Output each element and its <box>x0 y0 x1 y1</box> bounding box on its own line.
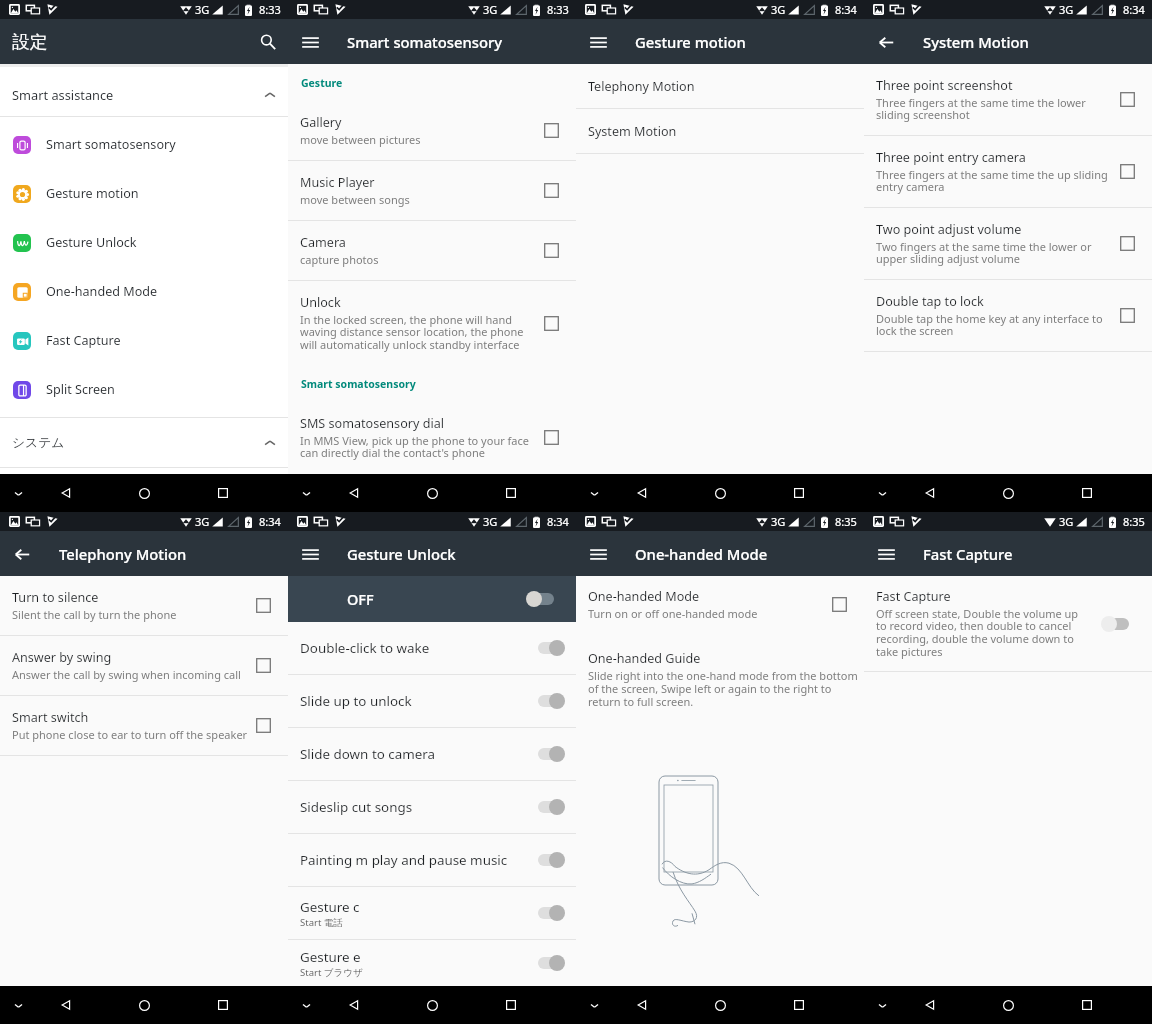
staticText: In the locked screen, the phone will han… <box>300 312 540 352</box>
staticText: Gesture motion <box>635 32 746 52</box>
staticText: Gesture Unlock <box>46 234 137 251</box>
button[interactable]: Search <box>254 28 282 56</box>
staticText: 8:34 <box>259 514 281 529</box>
button[interactable]: Three point screenshot <box>864 64 1152 136</box>
staticText: 3G <box>483 2 498 17</box>
button[interactable]: Double-click to wake <box>288 622 576 675</box>
staticText: Music Player <box>300 174 375 191</box>
staticText: Gesture e <box>300 948 361 966</box>
staticText: Three fingers at the same time the lower… <box>876 95 1116 122</box>
button[interactable]: Telephony Motion <box>576 64 864 109</box>
button[interactable]: Slide up to unlock <box>288 675 576 728</box>
button[interactable]: One-handed Mode <box>576 576 864 633</box>
button[interactable]: Unlock <box>288 281 576 365</box>
button[interactable]: Two point adjust volume <box>864 208 1152 280</box>
staticText: move between pictures <box>300 132 421 147</box>
button[interactable]: Recent apps <box>785 479 813 507</box>
button[interactable]: Answer by swing <box>0 636 288 696</box>
button[interactable]: SMS somatosensory dial <box>288 402 576 473</box>
button[interactable]: Fast Capture <box>864 576 1152 671</box>
button[interactable]: Double tap to lock <box>864 280 1152 352</box>
staticText: Gallery <box>300 114 342 131</box>
staticText: Smart somatosensory <box>301 377 416 391</box>
button[interactable]: Three point entry camera <box>864 136 1152 208</box>
button[interactable]: Recent apps <box>1073 479 1101 507</box>
button[interactable]: Hide keyboard <box>292 479 320 507</box>
button[interactable]: Back <box>340 479 368 507</box>
button[interactable]: Gesture Unlock <box>0 218 288 267</box>
button[interactable]: Back <box>628 479 656 507</box>
button[interactable]: Hide keyboard <box>4 479 32 507</box>
button[interactable]: Navigate up <box>872 28 900 56</box>
button[interactable]: Hide keyboard <box>580 479 608 507</box>
button[interactable]: Hide keyboard <box>292 991 320 1019</box>
button[interactable]: Music Player <box>288 161 576 221</box>
button[interactable]: システム <box>0 418 288 467</box>
button[interactable]: Recent apps <box>497 479 525 507</box>
button[interactable]: Recent apps <box>785 991 813 1019</box>
button[interactable]: Gesture motion <box>0 169 288 218</box>
button[interactable]: Open navigation menu <box>296 28 324 56</box>
staticText: Fast Capture <box>923 544 1013 564</box>
button[interactable]: Hide keyboard <box>4 991 32 1019</box>
button[interactable]: Smart somatosensory <box>0 120 288 169</box>
staticText: Gesture <box>301 76 343 90</box>
button[interactable]: Gallery <box>288 101 576 161</box>
button[interactable]: Home <box>418 991 446 1019</box>
button[interactable]: Split Screen <box>0 365 288 414</box>
button[interactable]: Fast Capture <box>0 316 288 365</box>
staticText: Double-click to wake <box>300 639 430 657</box>
button[interactable]: Back <box>340 991 368 1019</box>
button[interactable]: Back <box>916 479 944 507</box>
button[interactable]: Hide keyboard <box>868 991 896 1019</box>
button[interactable]: Recent apps <box>209 479 237 507</box>
button[interactable]: Open navigation menu <box>584 540 612 568</box>
button[interactable]: Slide down to camera <box>288 728 576 781</box>
button[interactable]: Camera <box>288 221 576 281</box>
staticText: Two fingers at the same time the lower o… <box>876 239 1116 266</box>
button[interactable]: Home <box>706 479 734 507</box>
button[interactable]: Smart assistance <box>0 67 288 116</box>
button[interactable]: Recent apps <box>209 991 237 1019</box>
staticText: Smart assistance <box>12 86 263 103</box>
staticText: 8:35 <box>1123 514 1145 529</box>
button[interactable]: Open navigation menu <box>296 540 324 568</box>
button[interactable]: Painting m play and pause music <box>288 834 576 887</box>
button[interactable]: Home <box>130 991 158 1019</box>
button[interactable]: Turn to silence <box>0 576 288 636</box>
button[interactable]: Recent apps <box>1073 991 1101 1019</box>
staticText: Answer by swing <box>12 649 112 666</box>
button[interactable]: Hide keyboard <box>580 991 608 1019</box>
button[interactable]: Open navigation menu <box>584 28 612 56</box>
staticText: Telephony Motion <box>588 78 695 95</box>
button[interactable]: Open navigation menu <box>872 540 900 568</box>
staticText: Silent the call by turn the phone <box>12 607 177 622</box>
button[interactable]: Hide keyboard <box>868 479 896 507</box>
button[interactable]: Back <box>628 991 656 1019</box>
button[interactable]: Gesture e <box>288 940 576 986</box>
button[interactable]: Back <box>52 991 80 1019</box>
staticText: Sideslip cut songs <box>300 798 413 816</box>
staticText: move between songs <box>300 192 410 207</box>
button[interactable]: Recent apps <box>497 991 525 1019</box>
staticText: System Motion <box>588 123 677 140</box>
staticText: 8:34 <box>835 2 857 17</box>
button[interactable]: Navigate up <box>8 540 36 568</box>
staticText: Camera <box>300 234 346 251</box>
button[interactable]: Back <box>916 991 944 1019</box>
button[interactable]: Sideslip cut songs <box>288 781 576 834</box>
staticText: Off screen state, Double the volume up t… <box>876 606 1091 659</box>
button[interactable]: Home <box>130 479 158 507</box>
button[interactable]: Smart switch <box>0 696 288 756</box>
button[interactable]: OFF <box>288 576 576 622</box>
staticText: One-handed Guide <box>588 650 701 667</box>
staticText: Slide down to camera <box>300 745 436 763</box>
button[interactable]: Home <box>994 479 1022 507</box>
button[interactable]: One-handed Mode <box>0 267 288 316</box>
button[interactable]: System Motion <box>576 109 864 154</box>
button[interactable]: Gesture c <box>288 887 576 940</box>
button[interactable]: Home <box>706 991 734 1019</box>
button[interactable]: Home <box>418 479 446 507</box>
button[interactable]: Home <box>994 991 1022 1019</box>
button[interactable]: Back <box>52 479 80 507</box>
